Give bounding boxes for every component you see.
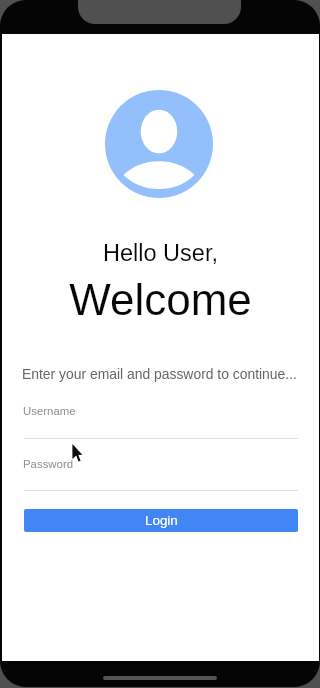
staticText: Password [23,458,74,471]
staticText: Username [23,405,76,418]
button[interactable]: Username [24,403,298,444]
staticText: Hello User, [2,240,319,266]
staticText: Login [145,513,178,528]
staticText: Enter your email and password to continu… [22,366,312,382]
button[interactable]: Password [24,456,298,496]
button[interactable]: Login [24,509,298,532]
other: Profile avatar [105,90,213,198]
staticText: Welcome [2,275,319,324]
